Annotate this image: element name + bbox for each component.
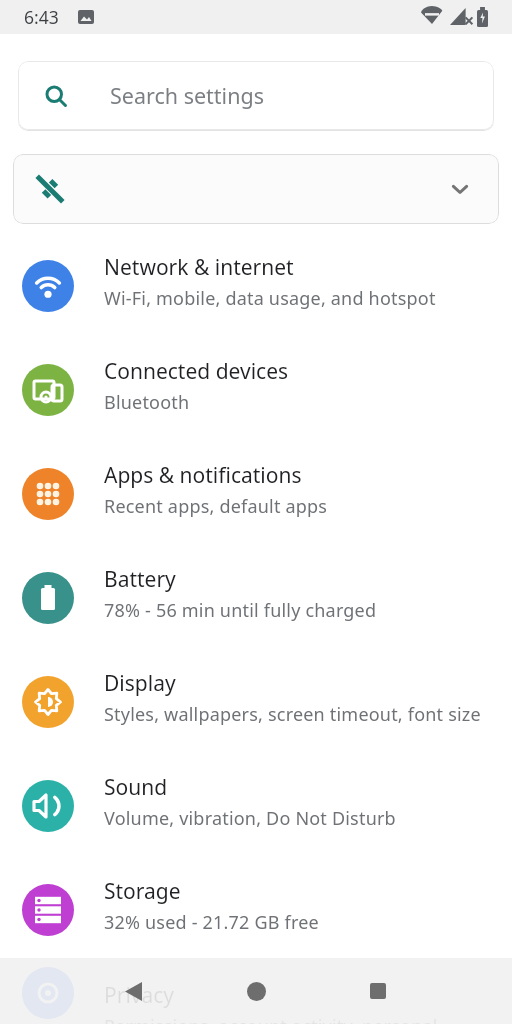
staticText: Display bbox=[104, 669, 176, 698]
button[interactable]: Sound bbox=[0, 754, 512, 858]
staticText: Styles, wallpapers, screen timeout, font… bbox=[104, 702, 481, 727]
staticText: Search settings bbox=[110, 81, 264, 110]
button[interactable] bbox=[232, 967, 280, 1015]
button[interactable] bbox=[13, 154, 499, 224]
button[interactable]: Search settings bbox=[18, 61, 494, 130]
staticText: Network & internet bbox=[104, 253, 294, 282]
staticText: Bluetooth bbox=[104, 390, 190, 415]
staticText: Sound bbox=[104, 773, 168, 802]
button[interactable]: Network & internet bbox=[0, 234, 512, 338]
staticText: Wi-Fi, mobile, data usage, and hotspot bbox=[104, 286, 436, 311]
button[interactable]: Display bbox=[0, 650, 512, 754]
button[interactable] bbox=[109, 967, 157, 1015]
staticText: 6:43 bbox=[24, 5, 59, 29]
staticText: 78% - 56 min until fully charged bbox=[104, 598, 377, 623]
staticText: Volume, vibration, Do Not Disturb bbox=[104, 806, 396, 831]
staticText: Privacy bbox=[104, 981, 175, 1010]
button[interactable]: Connected devices bbox=[0, 338, 512, 442]
staticText: Recent apps, default apps bbox=[104, 494, 328, 519]
staticText: Connected devices bbox=[104, 357, 289, 386]
button[interactable]: Apps & notifications bbox=[0, 442, 512, 546]
button[interactable] bbox=[354, 967, 402, 1015]
button[interactable]: Privacy bbox=[0, 962, 512, 1024]
button[interactable]: Battery bbox=[0, 546, 512, 650]
staticText: Battery bbox=[104, 565, 176, 594]
staticText: Storage bbox=[104, 877, 181, 906]
staticText: Apps & notifications bbox=[104, 461, 302, 490]
button[interactable]: Storage bbox=[0, 858, 512, 962]
staticText: 32% used - 21.72 GB free bbox=[104, 910, 319, 935]
